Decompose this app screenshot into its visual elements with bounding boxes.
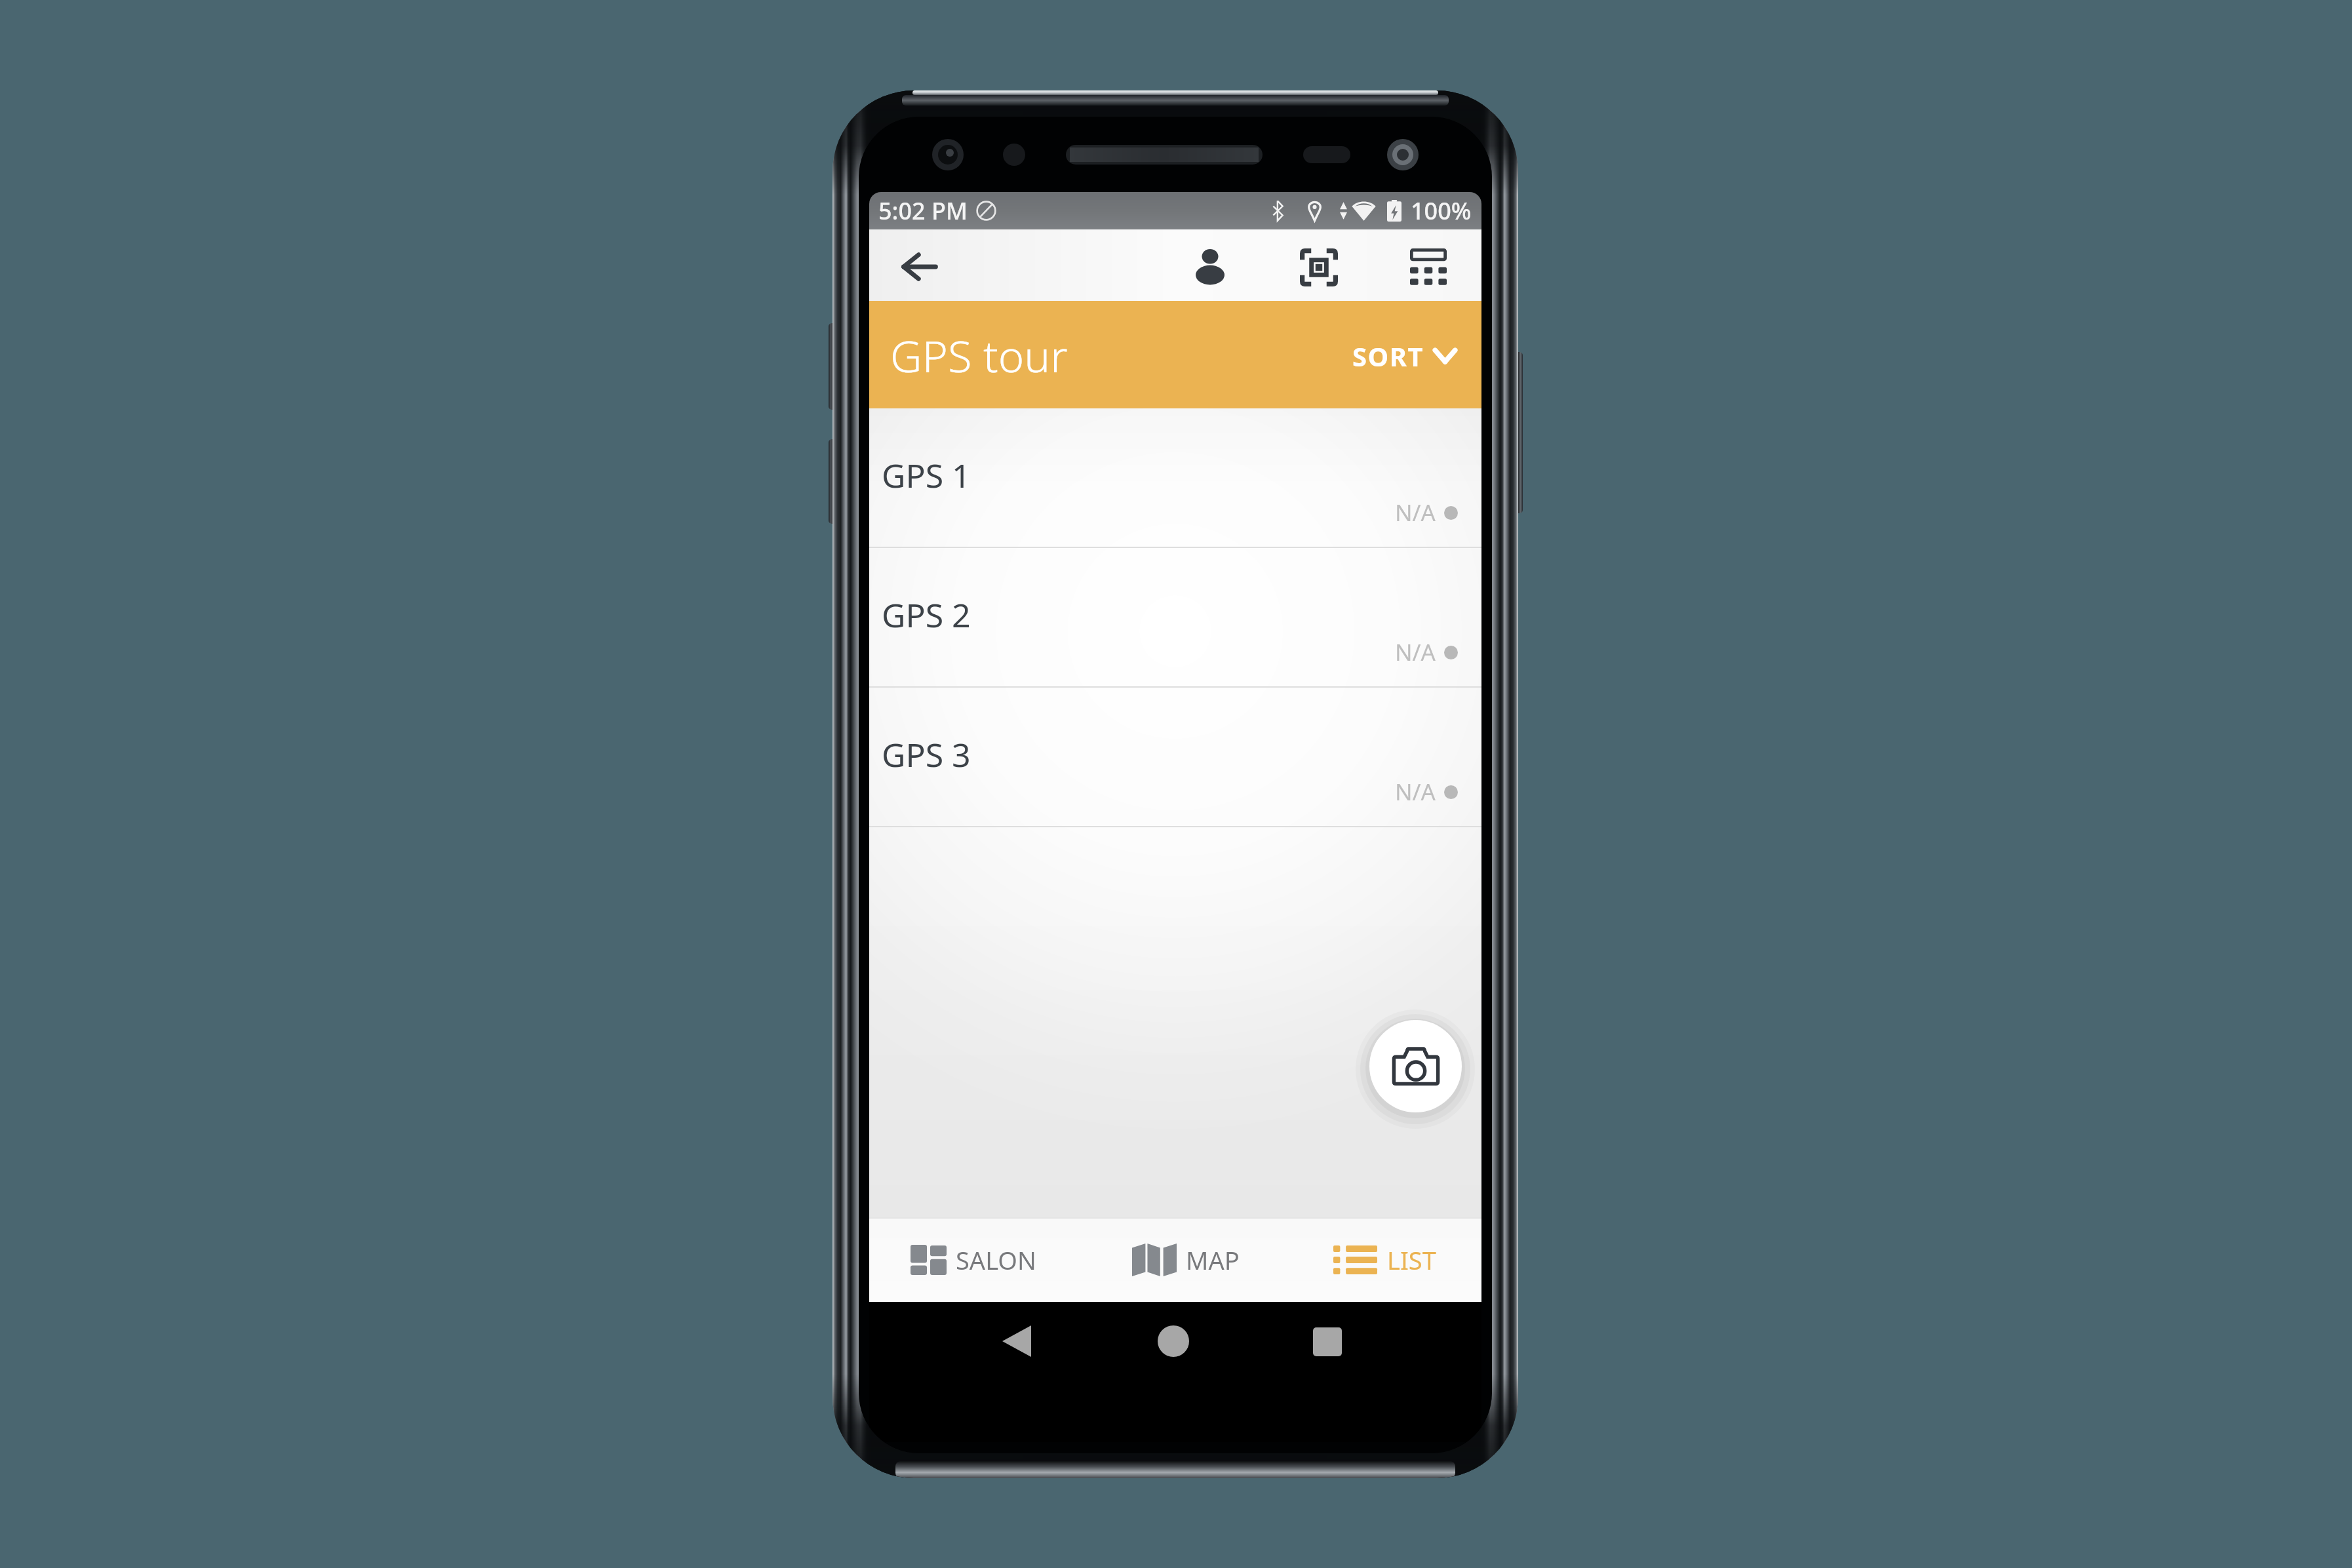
staticText: N/A	[1395, 637, 1436, 668]
button[interactable]: Account	[1179, 234, 1242, 297]
staticText: N/A	[1395, 497, 1436, 528]
button[interactable]: Keypad	[1397, 235, 1460, 298]
staticText: SORT	[1352, 338, 1424, 374]
staticText: GPS 1	[882, 453, 971, 498]
button[interactable]: GPS 1	[869, 408, 1481, 548]
staticText: MAP	[1186, 1243, 1240, 1277]
staticText: LIST	[1387, 1243, 1436, 1277]
staticText: 5:02 PM	[878, 195, 968, 227]
button[interactable]: LIST	[1282, 1217, 1481, 1302]
staticText: SALON	[956, 1243, 1036, 1277]
staticText: N/A	[1395, 776, 1436, 808]
button[interactable]: SORT	[1335, 324, 1481, 385]
staticText: 100%	[1411, 195, 1472, 227]
staticText: GPS 2	[882, 593, 971, 637]
button[interactable]: MAP	[1086, 1217, 1282, 1302]
staticText: GPS tour	[890, 325, 1068, 385]
button[interactable]: Back	[888, 235, 952, 299]
button[interactable]: Scan code	[1287, 236, 1350, 299]
button[interactable]: Home	[1158, 1325, 1189, 1357]
button[interactable]: Recent apps	[1313, 1327, 1342, 1356]
staticText: GPS 3	[882, 732, 971, 777]
button[interactable]: Back	[1002, 1325, 1031, 1357]
button[interactable]: GPS 2	[869, 548, 1481, 688]
button[interactable]: SALON	[869, 1217, 1086, 1302]
button[interactable]: Take photo	[1369, 1020, 1462, 1112]
button[interactable]: GPS 3	[869, 688, 1481, 827]
